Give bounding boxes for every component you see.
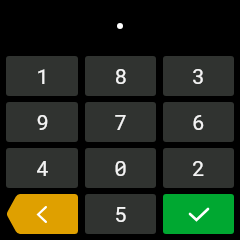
button[interactable]: 7 — [85, 102, 156, 142]
button[interactable]: 3 — [163, 56, 234, 96]
button[interactable]: 9 — [6, 102, 78, 142]
staticText: 8 — [114, 62, 127, 90]
staticText: 7 — [114, 108, 127, 136]
button[interactable]: 0 — [85, 148, 156, 188]
button[interactable]: Backspace — [6, 194, 78, 234]
button[interactable]: 8 — [85, 56, 156, 96]
staticText: 2 — [192, 154, 205, 182]
staticText: 1 — [36, 62, 49, 90]
staticText: 5 — [114, 200, 127, 228]
staticText: 4 — [36, 154, 49, 182]
staticText: 6 — [192, 108, 205, 136]
button[interactable]: 2 — [163, 148, 234, 188]
button[interactable]: Confirm — [163, 194, 234, 234]
button[interactable]: 6 — [163, 102, 234, 142]
staticText: 0 — [114, 154, 127, 182]
button[interactable]: 5 — [85, 194, 156, 234]
button[interactable]: 1 — [6, 56, 78, 96]
button[interactable]: 4 — [6, 148, 78, 188]
staticText: 3 — [192, 62, 205, 90]
staticText: 9 — [36, 108, 49, 136]
